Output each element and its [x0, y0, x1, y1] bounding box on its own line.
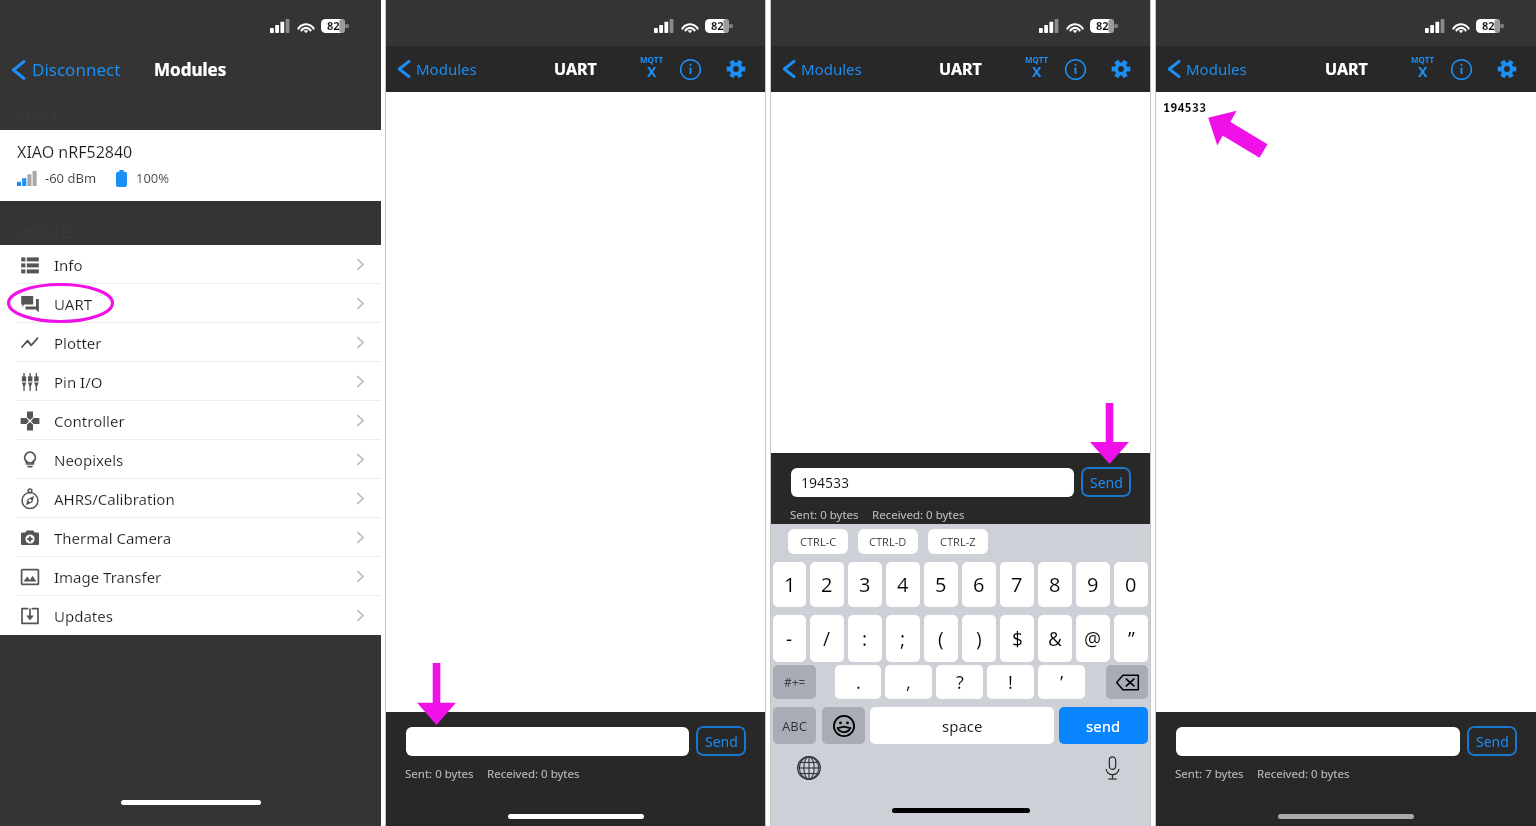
button[interactable]: Send: [1081, 467, 1131, 497]
button[interactable]: Backspace: [1106, 665, 1148, 699]
button[interactable]: ’: [1038, 665, 1085, 699]
button[interactable]: send: [1059, 707, 1148, 744]
button[interactable]: #+=: [773, 665, 816, 699]
button[interactable]: Info: [672, 49, 708, 89]
staticText: XIAO nRF52840: [17, 141, 133, 163]
staticText: Image Transfer: [54, 567, 162, 587]
button[interactable]: /: [810, 615, 844, 662]
staticText: Controller: [54, 411, 125, 431]
staticText: #+=: [784, 674, 806, 690]
button[interactable]: CTRL-D: [858, 529, 918, 554]
staticText: Send: [1090, 473, 1123, 492]
button[interactable]: ;: [886, 615, 920, 662]
button[interactable]: AHRS/Calibration: [0, 479, 381, 518]
button[interactable]: 7: [1000, 562, 1034, 607]
button[interactable]: ?: [936, 665, 983, 699]
staticText: Sent: 7 bytes: [1175, 766, 1244, 782]
button[interactable]: Change keyboard: [791, 750, 827, 786]
button[interactable]: 194533: [791, 468, 1074, 497]
button[interactable]: Modules: [783, 59, 862, 79]
button[interactable]: 0: [1114, 562, 1148, 607]
button[interactable]: Neopixels: [0, 440, 381, 479]
staticText: UART: [554, 58, 597, 80]
button[interactable]: !: [987, 665, 1034, 699]
staticText: ?: [956, 670, 964, 695]
button[interactable]: $: [1000, 615, 1034, 662]
staticText: UART: [939, 58, 982, 80]
button[interactable]: 5: [924, 562, 958, 607]
button[interactable]: -: [773, 615, 806, 662]
button[interactable]: CTRL-C: [788, 529, 848, 554]
button[interactable]: 4: [886, 562, 920, 607]
staticText: 1: [784, 571, 796, 598]
staticText: space: [942, 716, 983, 736]
button[interactable]: (: [924, 615, 958, 662]
button[interactable]: Modules: [398, 59, 477, 79]
button[interactable]: Emoji: [822, 707, 865, 744]
button[interactable]: MQTT: [634, 49, 670, 89]
button[interactable]: .: [835, 665, 881, 699]
staticText: Info: [54, 255, 83, 275]
button[interactable]: Controller: [0, 401, 381, 440]
staticText: UART: [54, 294, 93, 314]
staticText: Updates: [54, 606, 113, 626]
staticText: 194533: [1163, 99, 1207, 115]
button[interactable]: Settings: [718, 49, 754, 89]
button[interactable]: Settings: [1489, 49, 1525, 89]
staticText: Modules: [416, 59, 477, 79]
button[interactable]: UART: [0, 284, 381, 323]
button[interactable]: Info: [0, 245, 381, 284]
staticText: (: [938, 626, 944, 652]
staticText: CTRL-D: [869, 534, 907, 549]
button[interactable]: Send: [696, 726, 746, 756]
button[interactable]: ): [962, 615, 996, 662]
staticText: Modules: [801, 59, 862, 79]
button[interactable]: Settings: [1103, 49, 1139, 89]
button[interactable]: @: [1076, 615, 1110, 662]
button[interactable]: Plotter: [0, 323, 381, 362]
button[interactable]: Send: [1467, 726, 1517, 756]
staticText: 9: [1087, 571, 1099, 598]
staticText: Plotter: [54, 333, 102, 353]
button[interactable]: Image Transfer: [0, 557, 381, 596]
staticText: ,: [906, 670, 911, 695]
button[interactable]: [1176, 727, 1460, 756]
staticText: 0: [1125, 571, 1137, 598]
staticText: 82: [327, 18, 340, 33]
button[interactable]: &: [1038, 615, 1072, 662]
button[interactable]: Dictate: [1094, 750, 1130, 786]
button[interactable]: :: [848, 615, 882, 662]
staticText: 2: [821, 571, 833, 598]
staticText: 6: [973, 571, 985, 598]
button[interactable]: ”: [1114, 615, 1148, 662]
button[interactable]: 1: [773, 562, 806, 607]
button[interactable]: 6: [962, 562, 996, 607]
button[interactable]: 9: [1076, 562, 1110, 607]
button[interactable]: Info: [1443, 49, 1479, 89]
button[interactable]: Info: [1057, 49, 1093, 89]
button[interactable]: MQTT: [1405, 49, 1441, 89]
button[interactable]: CTRL-Z: [928, 529, 988, 554]
button[interactable]: [406, 727, 689, 756]
button[interactable]: ,: [885, 665, 932, 699]
staticText: 100%: [136, 169, 170, 187]
button[interactable]: Modules: [1168, 59, 1247, 79]
button[interactable]: Updates: [0, 596, 381, 635]
staticText: X: [1418, 62, 1428, 81]
button[interactable]: 8: [1038, 562, 1072, 607]
button[interactable]: ABC: [773, 707, 816, 744]
staticText: Send: [1476, 732, 1509, 751]
staticText: /: [823, 626, 831, 652]
button[interactable]: MQTT: [1019, 49, 1055, 89]
button[interactable]: Pin I/O: [0, 362, 381, 401]
staticText: Thermal Camera: [54, 528, 172, 548]
staticText: 82: [711, 18, 724, 33]
button[interactable]: Thermal Camera: [0, 518, 381, 557]
button[interactable]: space: [870, 707, 1054, 744]
button[interactable]: Disconnect: [12, 58, 121, 81]
staticText: ): [976, 626, 982, 652]
button[interactable]: 2: [810, 562, 844, 607]
staticText: 8: [1049, 571, 1061, 598]
button[interactable]: 3: [848, 562, 882, 607]
staticText: @: [1084, 626, 1102, 652]
